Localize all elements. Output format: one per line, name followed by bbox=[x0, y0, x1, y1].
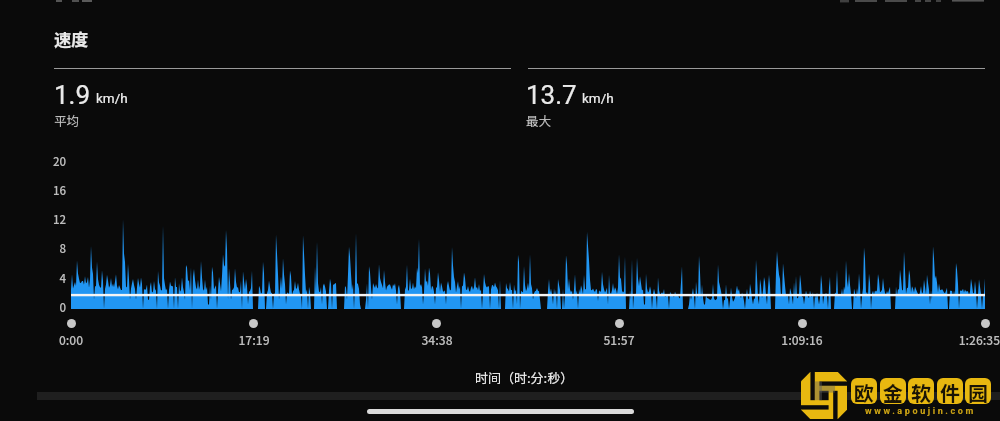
staticText: 1:09:16 bbox=[742, 331, 862, 348]
staticText: km/h bbox=[582, 90, 614, 106]
staticText: 4 bbox=[0, 270, 66, 287]
staticText: 0:00 bbox=[11, 331, 131, 348]
staticText: 0 bbox=[0, 299, 66, 316]
button[interactable]: Home bbox=[367, 409, 634, 414]
staticText: 20 bbox=[0, 153, 66, 170]
button[interactable]: 水平滚动条 bbox=[37, 392, 1000, 400]
staticText: 13.7 bbox=[526, 80, 577, 110]
staticText: 8 bbox=[0, 240, 66, 257]
staticText: 软 bbox=[911, 378, 931, 404]
staticText: 时间（时:分:秒） bbox=[475, 368, 574, 387]
staticText: 1.9 bbox=[54, 80, 91, 110]
button[interactable]: 1.9 bbox=[51, 80, 351, 134]
other: 站点标识 bbox=[801, 372, 847, 419]
button[interactable]: 时间刻度 bbox=[249, 319, 258, 328]
staticText: 件 bbox=[940, 378, 960, 404]
staticText: 欧 bbox=[854, 378, 874, 404]
staticText: 34:38 bbox=[377, 331, 497, 348]
button[interactable]: 速度图表 bbox=[71, 163, 985, 310]
staticText: km/h bbox=[96, 90, 128, 106]
staticText: 速度 bbox=[54, 26, 88, 51]
button[interactable]: 时间刻度 bbox=[981, 319, 990, 328]
staticText: 12 bbox=[0, 211, 66, 228]
staticText: 1:26:35 bbox=[879, 331, 1000, 348]
button[interactable]: 时间刻度 bbox=[432, 319, 441, 328]
staticText: 51:57 bbox=[559, 331, 679, 348]
button[interactable]: 时间刻度 bbox=[798, 319, 807, 328]
staticText: www.apoujin.com bbox=[849, 406, 992, 417]
staticText: 16 bbox=[0, 182, 66, 199]
staticText: 金 bbox=[883, 378, 903, 404]
button[interactable]: 时间刻度 bbox=[67, 319, 76, 328]
staticText: 园 bbox=[968, 378, 988, 404]
staticText: 最大 bbox=[526, 111, 552, 129]
staticText: 17:19 bbox=[194, 331, 314, 348]
button[interactable]: 时间刻度 bbox=[615, 319, 624, 328]
staticText: 平均 bbox=[54, 111, 80, 129]
button[interactable]: 13.7 bbox=[523, 80, 823, 134]
